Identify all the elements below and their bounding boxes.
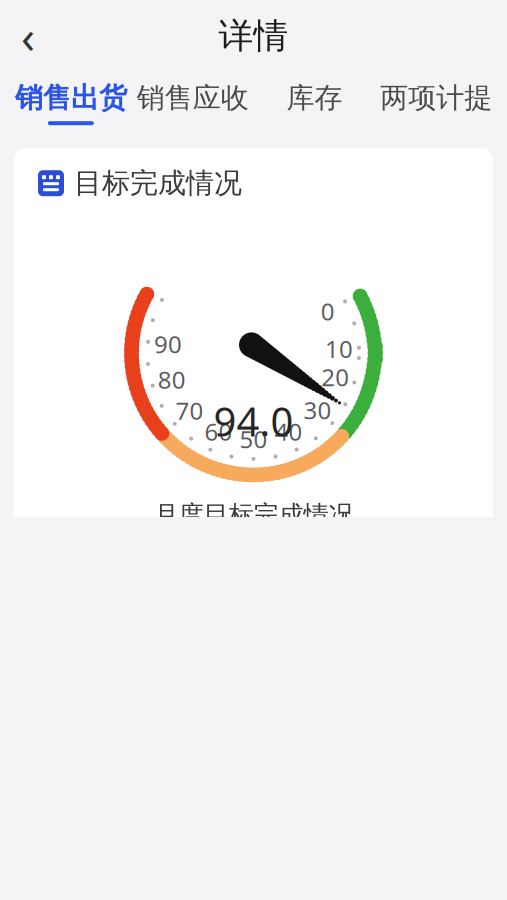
- button[interactable]: 销售应收: [132, 72, 254, 134]
- staticText: 30: [303, 394, 331, 426]
- staticText: 两项计提: [380, 81, 492, 115]
- staticText: 目标完成情况: [74, 166, 242, 200]
- staticText: 详情: [218, 15, 288, 57]
- staticText: 销售出货: [15, 81, 127, 115]
- staticText: 70: [176, 394, 204, 426]
- staticText: 90: [154, 328, 182, 360]
- staticText: 10: [325, 333, 353, 365]
- staticText: 40: [274, 415, 302, 447]
- staticText: 月度目标完成情况: [153, 499, 353, 530]
- staticText: 库存: [286, 81, 342, 115]
- button[interactable]: 销售出货: [10, 72, 132, 134]
- staticText: 80: [158, 363, 186, 395]
- button[interactable]: Back: [0, 8, 56, 64]
- button[interactable]: 库存: [253, 72, 375, 134]
- staticText: 0: [321, 295, 335, 327]
- staticText: ‹: [21, 6, 35, 66]
- staticText: 50: [239, 423, 267, 455]
- staticText: 20: [321, 361, 349, 393]
- staticText: 94.0: [213, 394, 293, 447]
- button[interactable]: 两项计提: [375, 72, 497, 134]
- staticText: 60: [204, 415, 232, 447]
- staticText: 销售应收: [137, 81, 249, 115]
